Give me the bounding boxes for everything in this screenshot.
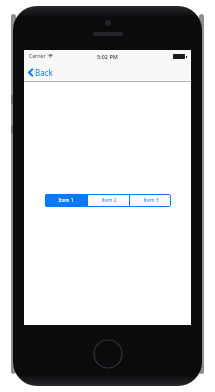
staticText: Item 1 [58, 197, 74, 204]
staticText: Item 3 [143, 197, 159, 204]
button[interactable]: Item 1 [45, 194, 87, 207]
button[interactable]: Item 3 [130, 194, 171, 207]
button[interactable]: Home [93, 339, 123, 369]
staticText: Item 2 [101, 197, 117, 204]
staticText: 5:02 PM [97, 53, 118, 60]
staticText: Back [35, 67, 53, 78]
button[interactable]: Item 2 [88, 194, 129, 207]
staticText: Carrier [29, 53, 46, 60]
button[interactable]: Back [24, 63, 59, 82]
